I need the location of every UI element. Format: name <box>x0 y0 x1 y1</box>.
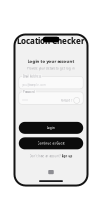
button[interactable]: Login <box>19 122 83 134</box>
button[interactable]: Show password <box>74 97 80 103</box>
staticText: Password <box>23 90 35 94</box>
button[interactable]: Continue as Guest <box>19 137 83 149</box>
button[interactable]: Dismiss keyboard <box>48 170 54 174</box>
staticText: Login to your account <box>27 58 74 64</box>
staticText: Location Checker <box>17 36 85 46</box>
button[interactable]: Forgot ? <box>61 99 72 102</box>
staticText: •••••• <box>22 99 28 102</box>
staticText: you@example.com <box>22 83 45 87</box>
staticText: Login <box>47 126 55 130</box>
staticText: Sign up <box>61 154 72 158</box>
staticText: Forgot ? <box>61 99 72 102</box>
staticText: Don't have an account? <box>29 154 60 158</box>
staticText: Provide your details to get log in <box>27 67 75 70</box>
staticText: Continue as Guest <box>37 142 64 145</box>
button[interactable]: Don't have an account? <box>29 154 72 158</box>
staticText: Email Address <box>23 75 41 78</box>
